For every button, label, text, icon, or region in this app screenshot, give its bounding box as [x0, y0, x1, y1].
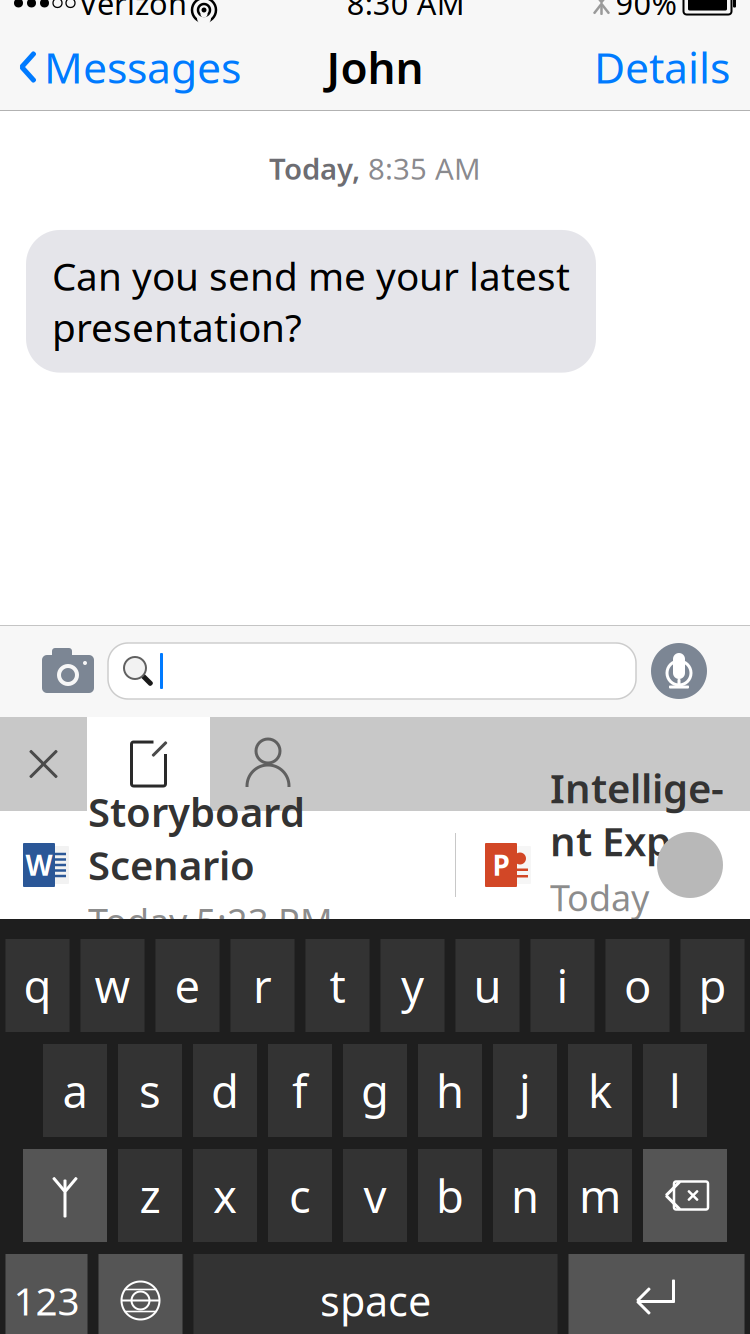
- staticText: k: [588, 1060, 612, 1121]
- staticText: t: [329, 955, 345, 1016]
- button[interactable]: Close: [0, 717, 87, 811]
- staticText: f: [292, 1060, 308, 1121]
- button[interactable]: m: [568, 1149, 632, 1242]
- staticText: John: [326, 38, 423, 96]
- button[interactable]: 123: [5, 1254, 87, 1334]
- staticText: Details: [594, 39, 730, 95]
- button[interactable]: Next keyboard: [98, 1254, 182, 1334]
- staticText: space: [320, 1273, 431, 1328]
- staticText: h: [436, 1060, 464, 1121]
- button[interactable]: t: [305, 939, 369, 1032]
- staticText: Today,: [269, 149, 360, 188]
- staticText: Verizon: [79, 0, 187, 23]
- staticText: u: [473, 955, 501, 1016]
- staticText: 8:30 AM: [347, 0, 465, 23]
- staticText: d: [211, 1060, 239, 1121]
- button[interactable]: u: [455, 939, 519, 1032]
- staticText: s: [139, 1060, 161, 1121]
- button[interactable]: k: [568, 1044, 632, 1137]
- staticText: z: [139, 1165, 160, 1226]
- button[interactable]: Camera: [28, 636, 108, 706]
- button[interactable]: g: [343, 1044, 407, 1137]
- button[interactable]: Documents: [87, 717, 210, 811]
- button[interactable]: Return: [568, 1254, 744, 1334]
- staticText: x: [213, 1165, 237, 1226]
- staticText: n: [511, 1165, 539, 1226]
- button[interactable]: l: [643, 1044, 707, 1137]
- button[interactable]: p: [680, 939, 744, 1032]
- staticText: Storyboard Scenario: [88, 785, 305, 891]
- staticText: i: [556, 955, 568, 1016]
- staticText: g: [361, 1060, 389, 1121]
- button[interactable]: y: [380, 939, 444, 1032]
- staticText: o: [624, 955, 651, 1016]
- staticText: Messages: [44, 39, 241, 95]
- button[interactable]: h: [418, 1044, 482, 1137]
- button[interactable]: r: [230, 939, 294, 1032]
- staticText: Today 5:23 PM: [88, 897, 333, 945]
- staticText: v: [363, 1165, 386, 1226]
- button[interactable]: Contacts: [210, 717, 326, 811]
- button[interactable]: d: [193, 1044, 257, 1137]
- staticText: P: [492, 846, 509, 884]
- button[interactable]: s: [118, 1044, 182, 1137]
- button[interactable]: x: [193, 1149, 257, 1242]
- button[interactable]: space: [193, 1254, 557, 1334]
- staticText: Intelligent Exp: [550, 761, 724, 867]
- button[interactable]: i: [530, 939, 594, 1032]
- staticText: y: [401, 955, 424, 1016]
- staticText: j: [519, 1060, 531, 1121]
- staticText: b: [436, 1165, 464, 1226]
- button[interactable]: Shift: [23, 1149, 107, 1242]
- button[interactable]: b: [418, 1149, 482, 1242]
- button[interactable]: o: [605, 939, 669, 1032]
- button[interactable]: f: [268, 1044, 332, 1137]
- staticText: Today 4:52: [550, 873, 649, 969]
- button[interactable]: e: [155, 939, 219, 1032]
- staticText: l: [669, 1060, 681, 1121]
- staticText: w: [94, 955, 130, 1016]
- button[interactable]: Details: [594, 29, 750, 105]
- button[interactable]: q: [5, 939, 69, 1032]
- button[interactable]: Dictate: [636, 636, 722, 706]
- staticText: a: [62, 1060, 87, 1121]
- staticText: p: [698, 955, 726, 1016]
- staticText: q: [23, 955, 51, 1016]
- button[interactable]: z: [118, 1149, 182, 1242]
- button[interactable]: v: [343, 1149, 407, 1242]
- staticText: W: [25, 846, 52, 884]
- staticText: 90%: [615, 0, 676, 23]
- staticText: Can you send me your latest presentation…: [52, 250, 570, 353]
- button[interactable]: j: [493, 1044, 557, 1137]
- staticText: 123: [13, 1275, 79, 1326]
- button[interactable]: a: [43, 1044, 107, 1137]
- staticText: m: [579, 1165, 621, 1226]
- button[interactable]: Delete: [643, 1149, 727, 1242]
- button[interactable]: Messages: [0, 29, 241, 105]
- staticText: c: [289, 1165, 311, 1226]
- staticText: e: [174, 955, 200, 1016]
- button[interactable]: c: [268, 1149, 332, 1242]
- staticText: 8:35 AM: [360, 149, 481, 188]
- staticText: r: [253, 955, 272, 1016]
- button[interactable]: w: [80, 939, 144, 1032]
- button[interactable]: n: [493, 1149, 557, 1242]
